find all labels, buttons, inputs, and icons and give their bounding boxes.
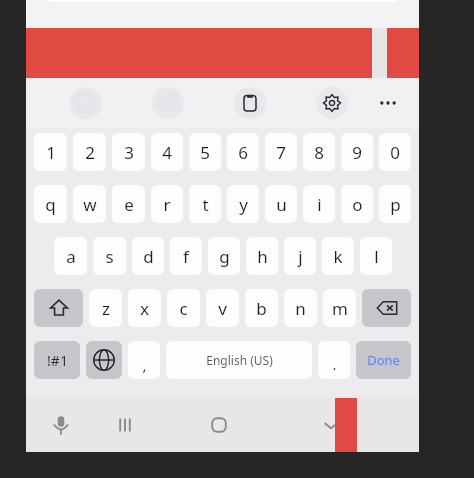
staticText: t [202,193,209,216]
button[interactable]: v [206,289,239,327]
button[interactable]: 9 [341,133,373,171]
staticText: 8 [314,141,324,164]
button[interactable]: 2 [73,133,106,171]
button[interactable]: Clipboard [234,87,266,119]
staticText: r [163,193,171,216]
button[interactable]: j [284,237,316,275]
button[interactable]: i [303,185,335,223]
button[interactable]: k [322,237,354,275]
button[interactable]: Hide keyboard [304,398,358,452]
staticText: u [276,193,287,216]
staticText: z [102,297,110,320]
button[interactable]: 1 [34,133,67,171]
button[interactable]: x [128,289,161,327]
button[interactable]: o [341,185,373,223]
staticText: 5 [200,141,210,164]
staticText: p [390,193,401,216]
staticText: q [45,193,56,216]
staticText: x [140,297,149,320]
staticText: 3 [124,141,134,164]
button[interactable]: h [246,237,278,275]
staticText: m [332,297,348,320]
button[interactable]: p [379,185,411,223]
staticText: o [352,193,363,216]
button[interactable]: 4 [151,133,183,171]
staticText: 4 [162,141,172,164]
button[interactable]: More options [372,87,404,119]
button[interactable]: w [73,185,106,223]
staticText: English (US) [206,352,273,368]
staticText: 9 [352,141,362,164]
button[interactable]: e [112,185,145,223]
staticText: 1 [46,141,56,164]
staticText: Done [367,351,400,369]
button[interactable]: !#1 [34,341,80,379]
button[interactable]: m [323,289,356,327]
button[interactable]: Emoji [70,87,102,119]
button[interactable]: l [360,237,392,275]
button[interactable]: a [54,237,87,275]
staticText: c [179,297,188,320]
button[interactable]: 5 [189,133,221,171]
button[interactable]: Settings [316,87,348,119]
staticText: j [298,245,303,268]
staticText: s [105,245,114,268]
button[interactable]: Done [356,341,411,379]
button[interactable]: s [93,237,126,275]
button[interactable]: y [227,185,259,223]
staticText: w [83,193,97,216]
staticText: y [239,193,248,216]
button[interactable]: 6 [227,133,259,171]
staticText: n [295,297,306,320]
staticText: b [256,297,267,320]
staticText: !#1 [47,351,68,370]
staticText: e [124,193,134,216]
button[interactable]: b [245,289,278,327]
staticText: i [317,193,322,216]
staticText: h [257,245,268,268]
button[interactable]: t [189,185,221,223]
staticText: f [183,245,189,268]
button[interactable]: r [151,185,183,223]
button[interactable]: f [170,237,202,275]
button[interactable]: . [318,341,350,379]
button[interactable]: Backspace [362,289,411,327]
button[interactable]: 0 [379,133,411,171]
staticText: k [333,245,343,268]
staticText: l [374,245,379,268]
button[interactable]: n [284,289,317,327]
button[interactable]: English (US) [166,341,312,379]
button[interactable]: Change language [86,341,122,379]
staticText: . [332,354,337,374]
button[interactable]: z [89,289,122,327]
staticText: , [142,355,147,375]
staticText: v [218,297,227,320]
staticText: g [219,245,230,268]
button[interactable]: 7 [265,133,297,171]
button[interactable]: c [167,289,200,327]
staticText: 0 [390,141,400,164]
button[interactable]: g [208,237,240,275]
staticText: d [143,245,154,268]
button[interactable]: 3 [112,133,145,171]
button[interactable]: Shift [34,289,83,327]
button[interactable]: Translate [152,87,184,119]
button[interactable]: Voice input [34,398,88,452]
staticText: 2 [85,141,95,164]
staticText: a [66,245,76,268]
button[interactable]: u [265,185,297,223]
staticText: 6 [238,141,248,164]
button[interactable]: q [34,185,67,223]
button[interactable]: Recent apps [98,398,152,452]
button[interactable]: Home [192,398,246,452]
button[interactable]: , [128,341,160,379]
button[interactable]: d [132,237,164,275]
staticText: 7 [276,141,286,164]
button[interactable]: 8 [303,133,335,171]
